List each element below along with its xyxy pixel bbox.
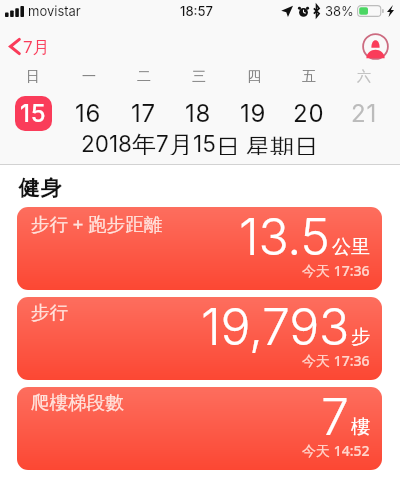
staticText: 20 xyxy=(293,99,325,128)
staticText: 13.5 xyxy=(239,207,330,267)
button[interactable]: 19 xyxy=(226,93,281,133)
staticText: 7 xyxy=(321,387,349,447)
staticText: 三 xyxy=(192,68,206,86)
staticText: 日 星期日 xyxy=(216,130,319,155)
staticText: 二 xyxy=(137,68,151,86)
button[interactable]: 18 xyxy=(171,93,226,133)
button[interactable]: 7月 xyxy=(0,35,60,58)
staticText: 六 xyxy=(357,68,371,86)
staticText: 爬樓梯段數 xyxy=(31,391,124,414)
staticText: 樓 xyxy=(351,415,370,439)
staticText: 步行 + 跑步距離 xyxy=(31,211,163,236)
button[interactable]: Profile xyxy=(362,33,389,60)
staticText: 19,793 xyxy=(201,297,349,357)
button[interactable]: 爬樓梯段數 xyxy=(17,387,382,470)
staticText: 今天 17:36 xyxy=(302,351,370,370)
staticText: 15 xyxy=(20,99,47,128)
button[interactable]: 步行 xyxy=(17,297,382,380)
staticText: 2018 xyxy=(81,130,132,155)
staticText: 7月 xyxy=(23,35,50,58)
button[interactable]: 步行 + 跑步距離 xyxy=(17,207,382,290)
staticText: 步 xyxy=(351,325,370,349)
staticText: 21 xyxy=(351,99,377,128)
staticText: 18 xyxy=(185,99,212,128)
staticText: 五 xyxy=(302,68,316,86)
staticText: movistar xyxy=(28,3,81,19)
button[interactable]: 16 xyxy=(61,93,116,133)
staticText: 今天 17:36 xyxy=(302,261,370,280)
staticText: 年 xyxy=(132,130,156,155)
staticText: 日 xyxy=(26,68,40,86)
staticText: 17 xyxy=(131,99,156,128)
staticText: 月 xyxy=(169,130,193,155)
staticText: 一 xyxy=(82,68,96,86)
staticText: 16 xyxy=(75,99,102,128)
staticText: 公里 xyxy=(332,235,370,259)
staticText: 15 xyxy=(193,130,216,155)
staticText: 步行 xyxy=(31,301,68,324)
staticText: 7 xyxy=(156,130,169,155)
button[interactable]: 15 xyxy=(5,93,61,133)
staticText: 19 xyxy=(240,99,267,128)
button[interactable]: 17 xyxy=(116,93,171,133)
button[interactable]: 20 xyxy=(281,93,336,133)
button[interactable]: 21 xyxy=(336,93,391,133)
staticText: 健身 xyxy=(18,175,62,201)
staticText: 今天 14:52 xyxy=(302,441,370,460)
staticText: 四 xyxy=(247,68,261,86)
staticText: 38% xyxy=(325,3,354,19)
staticText: 18:57 xyxy=(180,3,213,19)
